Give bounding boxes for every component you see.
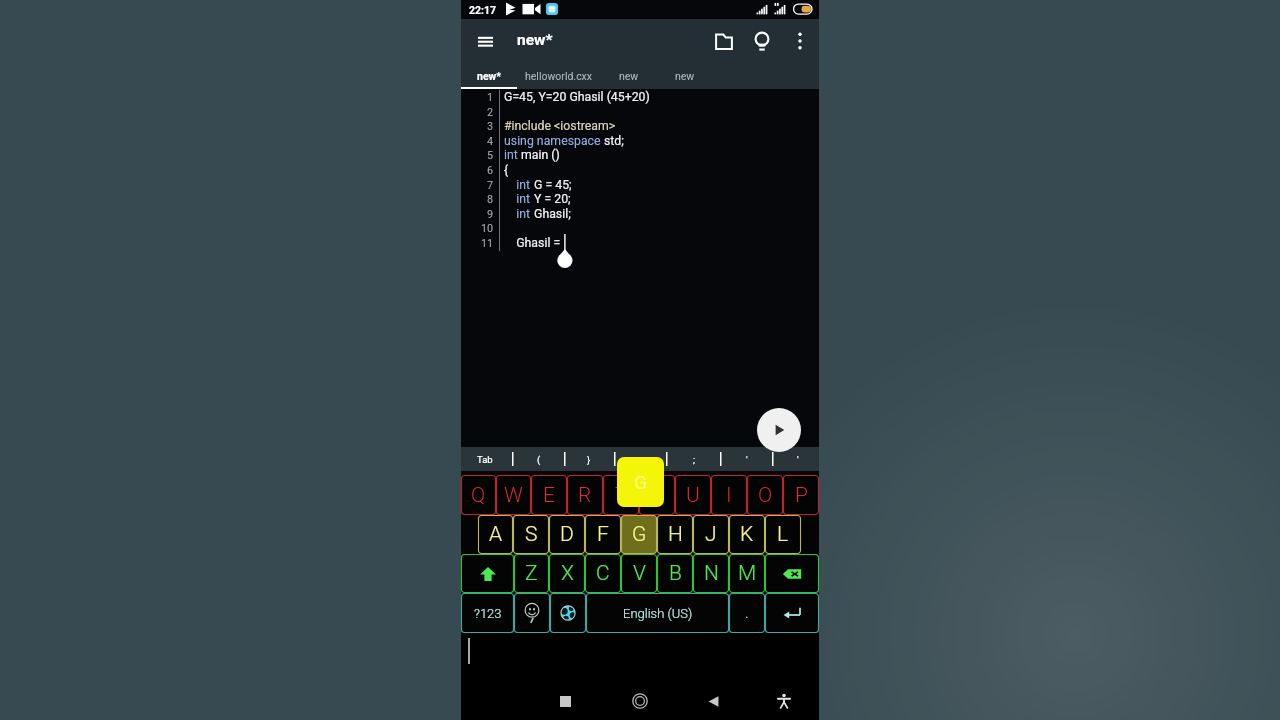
staticText: 3: [487, 120, 494, 133]
button[interactable]: .: [729, 593, 765, 633]
button[interactable]: L: [765, 515, 801, 554]
button[interactable]: ;: [678, 447, 710, 471]
button[interactable]: Q: [461, 475, 496, 515]
staticText: main (): [521, 148, 560, 162]
button[interactable]: Recent apps: [548, 684, 582, 718]
staticText: Ghasil;: [534, 207, 571, 221]
staticText: int: [504, 148, 521, 162]
button[interactable]: Tab: [469, 447, 501, 471]
button[interactable]: P: [783, 475, 819, 515]
staticText: new: [619, 70, 639, 82]
staticText: 22:17: [469, 4, 497, 16]
button[interactable]: Emoji: [514, 593, 550, 633]
staticText: O: [758, 483, 773, 508]
button[interactable]: Enter: [765, 593, 819, 633]
button[interactable]: Back: [696, 684, 730, 718]
button[interactable]: Tips: [746, 25, 778, 57]
staticText: English (US): [623, 606, 693, 621]
staticText: 4: [487, 135, 494, 148]
button[interactable]: English (US): [586, 593, 729, 633]
staticText: G = 45;: [534, 178, 572, 192]
staticText: {: [504, 163, 509, 177]
staticText: K: [740, 522, 754, 547]
staticText: H: [668, 522, 683, 547]
staticText: int: [504, 207, 534, 221]
staticText: G: [634, 471, 647, 493]
staticText: Y = 20;: [534, 192, 571, 206]
button[interactable]: C: [585, 554, 621, 593]
staticText: J: [705, 522, 717, 547]
button[interactable]: helloworld.cxx: [517, 63, 601, 89]
button[interactable]: (: [523, 447, 555, 471]
button[interactable]: I: [711, 475, 747, 515]
button[interactable]: ?123: [461, 593, 514, 633]
button[interactable]: N: [693, 554, 729, 593]
button[interactable]: new*: [461, 63, 517, 89]
staticText: ': [797, 454, 799, 465]
staticText: Tab: [477, 454, 493, 465]
button[interactable]: H: [657, 515, 693, 554]
button[interactable]: Navigation menu: [469, 25, 501, 57]
staticText: S: [525, 522, 538, 547]
button[interactable]: R: [567, 475, 603, 515]
staticText: ': [746, 454, 748, 465]
button[interactable]: Accessibility: [767, 684, 801, 718]
staticText: Ghasil =: [504, 236, 564, 250]
staticText: .: [745, 604, 749, 622]
button[interactable]: Run program: [757, 408, 801, 452]
button[interactable]: F: [585, 515, 621, 554]
button[interactable]: new: [601, 63, 657, 89]
button[interactable]: V: [621, 554, 657, 593]
button[interactable]: K: [729, 515, 765, 554]
button[interactable]: Change language: [550, 593, 586, 633]
button[interactable]: D: [549, 515, 585, 554]
button[interactable]: M: [729, 554, 765, 593]
button[interactable]: G: [621, 515, 657, 554]
staticText: N: [704, 561, 719, 586]
button[interactable]: ': [731, 447, 763, 471]
staticText: R: [578, 483, 592, 508]
button[interactable]: W: [496, 475, 531, 515]
staticText: A: [489, 522, 503, 547]
button[interactable]: ': [782, 447, 814, 471]
staticText: B: [669, 561, 682, 586]
staticText: using namespace: [504, 134, 604, 148]
button[interactable]: O: [747, 475, 783, 515]
staticText: new*: [517, 31, 553, 49]
button[interactable]: Backspace: [765, 554, 819, 593]
button[interactable]: J: [693, 515, 729, 554]
staticText: 7: [487, 179, 494, 192]
button[interactable]: }: [573, 447, 605, 471]
button[interactable]: E: [531, 475, 567, 515]
button[interactable]: U: [675, 475, 711, 515]
button[interactable]: S: [513, 515, 549, 554]
button[interactable]: Y: [639, 475, 675, 515]
button[interactable]: T: [603, 475, 639, 515]
button[interactable]: X: [549, 554, 585, 593]
staticText: E: [543, 483, 555, 508]
staticText: int: [504, 178, 534, 192]
button[interactable]: Open file: [708, 25, 740, 57]
staticText: L: [777, 522, 789, 547]
staticText: P: [795, 483, 808, 508]
staticText: G: [632, 522, 647, 547]
staticText: ?123: [474, 606, 502, 621]
staticText: T: [615, 483, 628, 508]
button[interactable]: More options: [784, 25, 816, 57]
button[interactable]: B: [657, 554, 693, 593]
button[interactable]: Shift: [461, 554, 514, 593]
staticText: (: [537, 454, 541, 465]
staticText: 1: [487, 91, 494, 104]
staticText: C: [596, 561, 610, 586]
button[interactable]: A: [478, 515, 513, 554]
button[interactable]: Z: [514, 554, 549, 593]
button[interactable]: new: [657, 63, 713, 89]
staticText: 9: [487, 208, 494, 221]
staticText: Z: [525, 561, 538, 586]
staticText: helloworld.cxx: [525, 70, 593, 82]
button[interactable]: Home: [623, 684, 657, 718]
staticText: 8: [487, 193, 494, 206]
staticText: Y: [651, 483, 664, 508]
staticText: I: [726, 483, 732, 508]
staticText: std;: [604, 134, 624, 148]
